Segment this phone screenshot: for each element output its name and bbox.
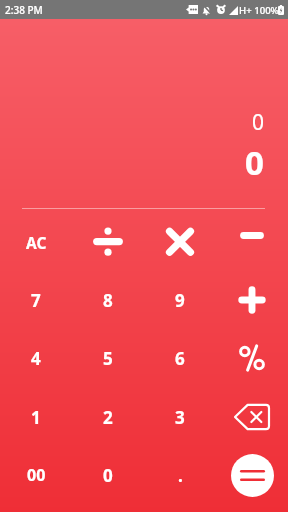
button[interactable]: 7 <box>0 271 72 329</box>
button[interactable]: 00 <box>0 446 72 504</box>
button[interactable]: Multiply <box>144 213 216 271</box>
button[interactable]: . <box>144 446 216 504</box>
button[interactable]: Percent <box>216 329 288 387</box>
staticText: H+ 100% <box>239 4 279 17</box>
staticText: 3 <box>175 406 185 429</box>
staticText: 8 <box>103 289 113 312</box>
button[interactable]: 5 <box>72 329 144 387</box>
staticText: 2 <box>103 406 113 429</box>
button[interactable]: 9 <box>144 271 216 329</box>
button[interactable]: AC <box>0 213 72 271</box>
button[interactable]: Plus <box>216 271 288 329</box>
staticText: 1 <box>31 406 41 429</box>
staticText: 0 <box>0 140 264 185</box>
staticText: 2:38 PM <box>5 3 43 17</box>
staticText: 9 <box>175 289 185 312</box>
button[interactable]: 0 <box>72 446 144 504</box>
button[interactable]: 4 <box>0 329 72 387</box>
staticText: 0 <box>103 464 113 487</box>
staticText: 6 <box>175 347 185 370</box>
staticText: AC <box>26 232 47 253</box>
staticText: 4 <box>31 347 41 370</box>
staticText: 0 <box>0 108 264 137</box>
button[interactable]: 2 <box>72 388 144 446</box>
staticText: . <box>178 464 183 487</box>
button[interactable]: 1 <box>0 388 72 446</box>
staticText: 00 <box>27 464 46 486</box>
staticText: 7 <box>31 289 41 312</box>
button[interactable]: 8 <box>72 271 144 329</box>
button[interactable]: 3 <box>144 388 216 446</box>
button[interactable]: Equals <box>216 446 288 504</box>
staticText: 5 <box>103 347 113 370</box>
button[interactable]: Divide <box>72 213 144 271</box>
button[interactable]: 6 <box>144 329 216 387</box>
button[interactable]: Minus <box>216 213 288 271</box>
button[interactable]: Backspace <box>216 388 288 446</box>
